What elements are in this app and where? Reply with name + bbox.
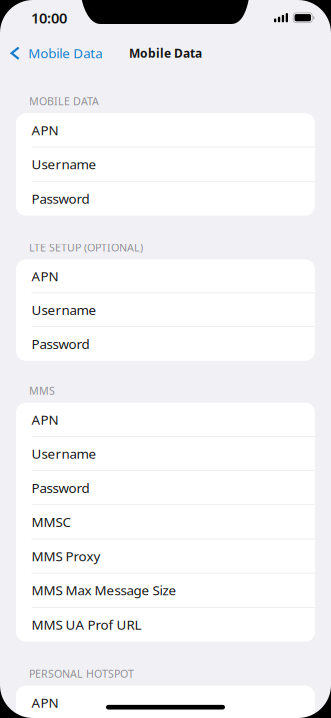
staticText: Password bbox=[31, 335, 89, 353]
button[interactable]: APN bbox=[16, 259, 315, 293]
button[interactable]: Password bbox=[16, 327, 315, 361]
staticText: MMS UA Prof URL bbox=[31, 616, 141, 633]
staticText: Username bbox=[31, 445, 96, 462]
staticText: APN bbox=[31, 267, 58, 285]
staticText: PERSONAL HOTSPOT bbox=[29, 667, 134, 681]
button[interactable]: APN bbox=[16, 113, 315, 147]
staticText: Username bbox=[31, 301, 96, 319]
staticText: Mobile Data bbox=[129, 45, 202, 61]
button[interactable]: MMS Max Message Size bbox=[16, 573, 315, 607]
staticText: MMSC bbox=[31, 513, 70, 531]
button[interactable]: MMS UA Prof URL bbox=[16, 608, 315, 642]
button[interactable]: APN bbox=[16, 686, 315, 718]
staticText: APN bbox=[31, 121, 58, 139]
staticText: Mobile Data bbox=[28, 44, 102, 62]
staticText: 10:00 bbox=[31, 8, 67, 27]
staticText: MMS Proxy bbox=[31, 547, 100, 565]
staticText: Username bbox=[31, 155, 96, 173]
staticText: Password bbox=[31, 190, 89, 207]
staticText: Password bbox=[31, 479, 89, 497]
staticText: APN bbox=[31, 411, 58, 428]
button[interactable]: Mobile Data bbox=[0, 38, 118, 68]
staticText: MOBILE DATA bbox=[29, 94, 99, 108]
button[interactable]: Username bbox=[16, 293, 315, 327]
button[interactable]: Password bbox=[16, 181, 315, 216]
button[interactable]: Username bbox=[16, 147, 315, 182]
button[interactable]: MMS Proxy bbox=[16, 539, 315, 573]
staticText: LTE SETUP (OPTIONAL) bbox=[29, 240, 143, 254]
button[interactable]: APN bbox=[16, 403, 315, 437]
staticText: MMS Max Message Size bbox=[31, 581, 176, 599]
button[interactable]: MMSC bbox=[16, 505, 315, 539]
button[interactable]: Password bbox=[16, 471, 315, 505]
button[interactable]: Username bbox=[16, 437, 315, 471]
staticText: MMS bbox=[29, 384, 55, 398]
staticText: APN bbox=[31, 694, 58, 711]
